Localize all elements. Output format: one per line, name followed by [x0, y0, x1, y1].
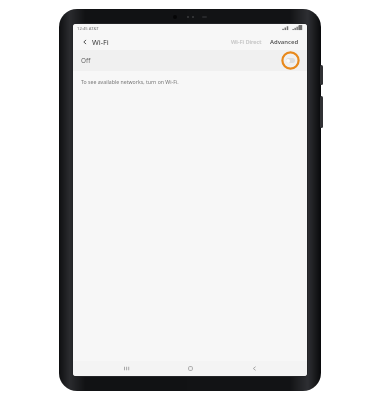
button[interactable]: Back	[243, 361, 265, 376]
staticText: 12:45 AT&T	[77, 26, 99, 32]
button[interactable]: Recents	[115, 361, 137, 376]
button[interactable]: Wi-Fi Direct	[228, 35, 265, 49]
button[interactable]: Home	[179, 361, 201, 376]
button[interactable]: Advanced	[267, 35, 302, 49]
button[interactable]: Off	[73, 50, 307, 71]
staticText: Off	[81, 56, 91, 65]
button[interactable]: Back	[78, 35, 91, 48]
staticText: To see available networks, turn on Wi-Fi…	[81, 78, 179, 85]
staticText: Wi-Fi Direct	[231, 38, 262, 46]
staticText: Wi-Fi	[92, 37, 109, 47]
staticText: Advanced	[270, 38, 299, 46]
button[interactable]: Wi-Fi toggle	[281, 51, 300, 70]
